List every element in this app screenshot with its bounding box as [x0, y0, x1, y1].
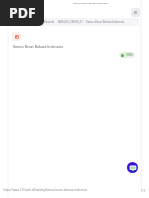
- staticText: 1/1: [141, 189, 146, 193]
- staticText: Beranda · KATALOG_UMUM_01 · Kamus Besar …: [44, 20, 125, 24]
- staticText: PDF: [9, 3, 36, 22]
- button[interactable]: Menu: [131, 8, 140, 17]
- button[interactable]: Chat: [127, 162, 138, 173]
- staticText: https://www.123.web.id/katalog/kamus-bes…: [3, 188, 88, 192]
- staticText: 100%: [126, 53, 133, 57]
- staticText: Kamus Besar Bahasa Indonesia: [13, 44, 63, 49]
- button[interactable]: 100%: [119, 52, 135, 58]
- staticText: Kamus Besar Bahasa Indonesia: [73, 1, 109, 4]
